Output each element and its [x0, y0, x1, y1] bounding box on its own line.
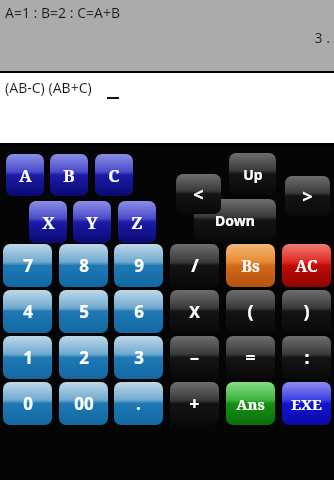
staticText: : [304, 345, 310, 370]
staticText: X [189, 301, 200, 323]
staticText: A [19, 164, 32, 187]
staticText: 4 [23, 300, 33, 323]
button[interactable]: C [95, 154, 133, 196]
staticText: Ans [236, 394, 265, 414]
staticText: 0 [23, 392, 33, 415]
button[interactable]: Y [73, 201, 111, 243]
button[interactable]: 2 [59, 336, 108, 379]
button[interactable]: A [6, 154, 44, 196]
button[interactable]: Decimal point [114, 382, 163, 425]
staticText: 3 [134, 346, 144, 369]
button[interactable]: Up [229, 153, 276, 195]
button[interactable]: B [50, 154, 88, 196]
staticText: 1 [23, 346, 33, 369]
staticText: C [108, 164, 120, 187]
staticText: 8 [79, 254, 89, 277]
staticText: B [63, 164, 75, 187]
button[interactable]: AC [282, 244, 331, 287]
button[interactable]: Z [118, 201, 156, 243]
button[interactable]: Equals [226, 336, 275, 379]
staticText: 7 [23, 254, 33, 277]
staticText: Z [131, 211, 143, 234]
staticText: Down [215, 211, 255, 230]
button[interactable]: Divide [170, 244, 219, 287]
staticText: 00 [74, 392, 94, 415]
staticText: Up [243, 165, 263, 184]
staticText: 9 [134, 254, 144, 277]
button[interactable]: 5 [59, 290, 108, 333]
staticText: – [190, 345, 199, 370]
button[interactable]: X [29, 201, 67, 243]
button[interactable]: Left [176, 174, 221, 214]
button[interactable]: Right [285, 176, 330, 216]
button[interactable]: 8 [59, 244, 108, 287]
button[interactable]: Open paren [226, 290, 275, 333]
staticText: 2 [79, 346, 89, 369]
staticText: X [42, 211, 55, 234]
staticText: ) [303, 299, 310, 324]
staticText: < [193, 182, 204, 207]
staticText: > [302, 184, 313, 209]
button[interactable]: 3 [114, 336, 163, 379]
staticText: 3 . [0, 28, 330, 48]
staticText: ( [247, 299, 254, 324]
staticText: Bs [241, 255, 260, 277]
button[interactable]: 4 [3, 290, 52, 333]
staticText: AC [295, 255, 318, 277]
button[interactable]: Ans [226, 382, 275, 425]
button[interactable]: 9 [114, 244, 163, 287]
staticText: Y [86, 211, 98, 234]
staticText: 5 [79, 300, 89, 323]
staticText: + [189, 391, 200, 416]
button[interactable]: 1 [3, 336, 52, 379]
button[interactable]: 6 [114, 290, 163, 333]
button[interactable]: Bs [226, 244, 275, 287]
staticText: / [191, 253, 199, 278]
button[interactable]: Plus [170, 382, 219, 425]
button[interactable]: Close paren [282, 290, 331, 333]
button[interactable]: Multiply [170, 290, 219, 333]
staticText: = [245, 345, 256, 370]
staticText: (AB-C) (AB+C) [5, 78, 92, 97]
button[interactable]: Colon [282, 336, 331, 379]
button[interactable]: Down [194, 199, 276, 241]
staticText: EXE [291, 394, 322, 414]
button[interactable]: 0 [3, 382, 52, 425]
staticText: A=1 : B=2 : C=A+B [5, 3, 121, 22]
staticText: 6 [134, 300, 144, 323]
staticText: . [136, 392, 141, 415]
button[interactable]: Minus [170, 336, 219, 379]
button[interactable]: 00 [59, 382, 108, 425]
button[interactable]: 7 [3, 244, 52, 287]
button[interactable]: EXE [282, 382, 331, 425]
